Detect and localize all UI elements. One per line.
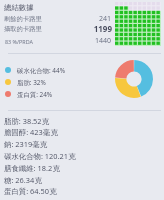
button[interactable]: 脂肪: 32%	[5, 76, 164, 88]
button[interactable]: 脂肪: 38.52克	[0, 115, 164, 127]
staticText: 1440	[94, 36, 111, 46]
staticText: 總結數據	[4, 3, 34, 12]
button[interactable]: 膽固醇: 423毫克	[0, 126, 164, 138]
staticText: 1199	[93, 23, 112, 34]
staticText: 脂肪: 38.52克	[4, 116, 49, 126]
staticText: 膽固醇: 423毫克	[4, 127, 58, 137]
staticText: 膳食纖維: 18.2克	[4, 163, 60, 173]
staticText: 剩餘的卡路里	[4, 15, 42, 23]
staticText: 脂肪: 32%	[17, 78, 46, 87]
button[interactable]: 碳水化合物: 120.21克	[0, 150, 164, 162]
button[interactable]: 膳食纖維: 18.2克	[0, 162, 164, 174]
staticText: 攝取的卡路里	[4, 25, 42, 33]
staticText: 蛋白質: 24%	[17, 90, 53, 99]
button[interactable]: 蛋白質: 64.50克	[0, 185, 164, 197]
button[interactable]: 糖: 26.34克	[0, 174, 164, 186]
button[interactable]: 剩餘的卡路里	[0, 13, 164, 24]
button[interactable]: 攝取的卡路里	[0, 23, 164, 34]
button[interactable]: 碳水化合物: 44%	[5, 64, 164, 76]
button[interactable]: 蛋白質: 24%	[5, 88, 164, 100]
staticText: 83 %/PRDA	[5, 38, 33, 45]
button[interactable]: 鈉: 2319毫克	[0, 138, 164, 150]
staticText: 蛋白質: 64.50克	[4, 186, 57, 196]
staticText: 鈉: 2319毫克	[4, 139, 47, 149]
staticText: 碳水化合物: 120.21克	[4, 151, 76, 161]
staticText: 糖: 26.34克	[4, 175, 42, 185]
staticText: 241	[98, 14, 111, 24]
staticText: 碳水化合物: 44%	[17, 66, 65, 75]
